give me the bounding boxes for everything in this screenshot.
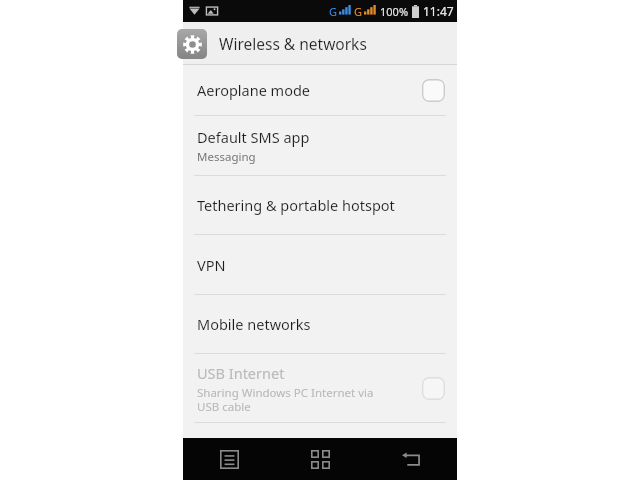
staticText: Default SMS app — [197, 127, 310, 147]
staticText: 100% — [380, 4, 409, 19]
button[interactable]: Mobile networks — [183, 295, 457, 353]
button[interactable]: Menu — [207, 438, 251, 480]
button[interactable]: Back — [389, 438, 433, 480]
button[interactable]: USB Internet — [183, 354, 457, 422]
button[interactable]: Tethering & portable hotspot — [183, 176, 457, 234]
staticText: G — [329, 4, 338, 19]
staticText: Sharing Windows PC Internet via USB cabl… — [197, 385, 374, 414]
staticText: Aeroplane mode — [197, 80, 311, 100]
staticText: Messaging — [197, 149, 256, 165]
staticText: Wireless & networks — [219, 33, 367, 54]
button[interactable]: Aeroplane mode — [183, 65, 457, 115]
button[interactable]: Home — [298, 438, 342, 480]
button[interactable]: VPN — [183, 235, 457, 294]
button[interactable]: Default SMS app — [183, 116, 457, 175]
staticText: Mobile networks — [197, 314, 311, 334]
staticText: 11:47 — [423, 3, 454, 19]
staticText: VPN — [197, 255, 226, 275]
staticText: Tethering & portable hotspot — [197, 195, 395, 215]
staticText: G — [354, 4, 363, 19]
staticText: USB Internet — [197, 363, 285, 383]
